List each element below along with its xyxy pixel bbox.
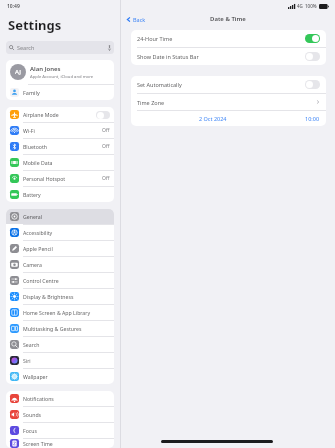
button[interactable]: Control Centre [6,273,114,288]
button[interactable]: Set Automatically [131,76,326,93]
staticText: Date & Time [210,15,246,23]
button[interactable]: Bluetooth [6,139,114,154]
staticText: Off [102,175,110,182]
button[interactable]: AJ [6,60,114,84]
button[interactable]: Sounds [6,407,114,422]
staticText: Control Centre [23,277,59,284]
button[interactable]: Home Screen & App Library [6,305,114,320]
button[interactable]: Multitasking & Gestures [6,321,114,336]
staticText: Multitasking & Gestures [23,325,82,332]
button[interactable]: Accessibility [6,225,114,240]
staticText: AJ [15,68,21,76]
staticText: Off [102,127,110,134]
button[interactable]: 24-Hour Time [305,34,320,43]
button[interactable]: Mobile Data [6,155,114,170]
staticText: Focus [23,427,38,434]
button[interactable]: Family [6,85,114,100]
button[interactable]: Show Date in Status Bar [131,48,326,65]
staticText: General [23,213,43,220]
staticText: Notifications [23,395,54,402]
staticText: 2 Oct 2024 [199,115,227,122]
button[interactable]: Focus [6,423,114,438]
staticText: Airplane Mode [23,111,59,118]
button[interactable]: Wi-Fi [6,123,114,138]
staticText: Back [133,16,146,23]
button[interactable]: Show Date in Status Bar [305,52,320,61]
staticText: Camera [23,261,42,268]
staticText: Home Screen & App Library [23,309,91,316]
staticText: Show Date in Status Bar [137,53,199,60]
button[interactable]: General [6,209,114,224]
button[interactable]: Siri [6,353,114,368]
staticText: Wallpaper [23,373,48,380]
button[interactable]: 24-Hour Time [131,30,326,47]
button[interactable]: Notifications [6,391,114,406]
staticText: Screen Time [23,440,53,447]
button[interactable]: Apple Pencil [6,241,114,256]
staticText: Set Automatically [137,81,182,88]
staticText: Display & Brightness [23,293,74,300]
staticText: Accessibility [23,229,53,236]
staticText: Apple Account, iCloud and more [30,74,94,80]
button[interactable]: Airplane Mode [6,107,114,122]
staticText: Search [17,44,35,51]
button[interactable]: Back [126,16,146,23]
staticText: 24-Hour Time [137,35,173,42]
button[interactable]: Display & Brightness [6,289,114,304]
button[interactable]: Wallpaper [6,369,114,384]
staticText: Search [23,341,40,348]
staticText: Bluetooth [23,143,48,150]
staticText: Wi-Fi [23,127,35,134]
staticText: 10:00 [305,115,320,122]
button[interactable]: Camera [6,257,114,272]
button[interactable]: 2 Oct 2024 [131,111,326,126]
staticText: Family [23,89,40,96]
staticText: Personal Hotspot [23,175,66,182]
staticText: Apple Pencil [23,245,53,252]
staticText: Settings [8,16,62,34]
button[interactable]: Screen Time [6,439,114,448]
button[interactable]: Battery [6,187,114,202]
staticText: Mobile Data [23,159,53,166]
staticText: Off [102,143,110,150]
staticText: Alan Jones [30,65,61,73]
staticText: Siri [23,357,31,364]
staticText: Battery [23,191,41,198]
button[interactable]: Time Zone [131,94,326,110]
button[interactable]: Toggle [96,111,110,119]
button[interactable]: Search [6,337,114,352]
button[interactable]: Search [6,41,114,54]
staticText: Sounds [23,411,42,418]
staticText: 10:49 [7,3,20,10]
staticText: 100% [305,3,317,9]
staticText: Time Zone [137,99,165,106]
staticText: 4G [297,3,303,9]
button[interactable]: Set Automatically [305,80,320,89]
button[interactable]: Personal Hotspot [6,171,114,186]
